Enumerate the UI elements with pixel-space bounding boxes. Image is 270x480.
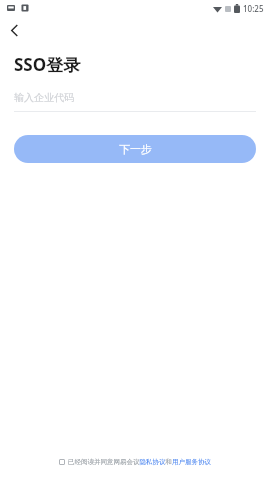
- staticText: 输入企业代码: [14, 91, 74, 104]
- staticText: 下一步: [119, 142, 152, 156]
- button[interactable]: 输入企业代码: [14, 91, 256, 112]
- button[interactable]: 已经阅读并同意网易会议隐私协议和用户服务协议: [0, 458, 270, 466]
- button[interactable]: Back: [0, 16, 28, 44]
- button[interactable]: 下一步: [14, 135, 256, 163]
- staticText: 10:25: [243, 3, 264, 14]
- staticText: SSO登录: [14, 53, 81, 76]
- staticText: 已经阅读并同意网易会议隐私协议和用户服务协议: [68, 458, 211, 466]
